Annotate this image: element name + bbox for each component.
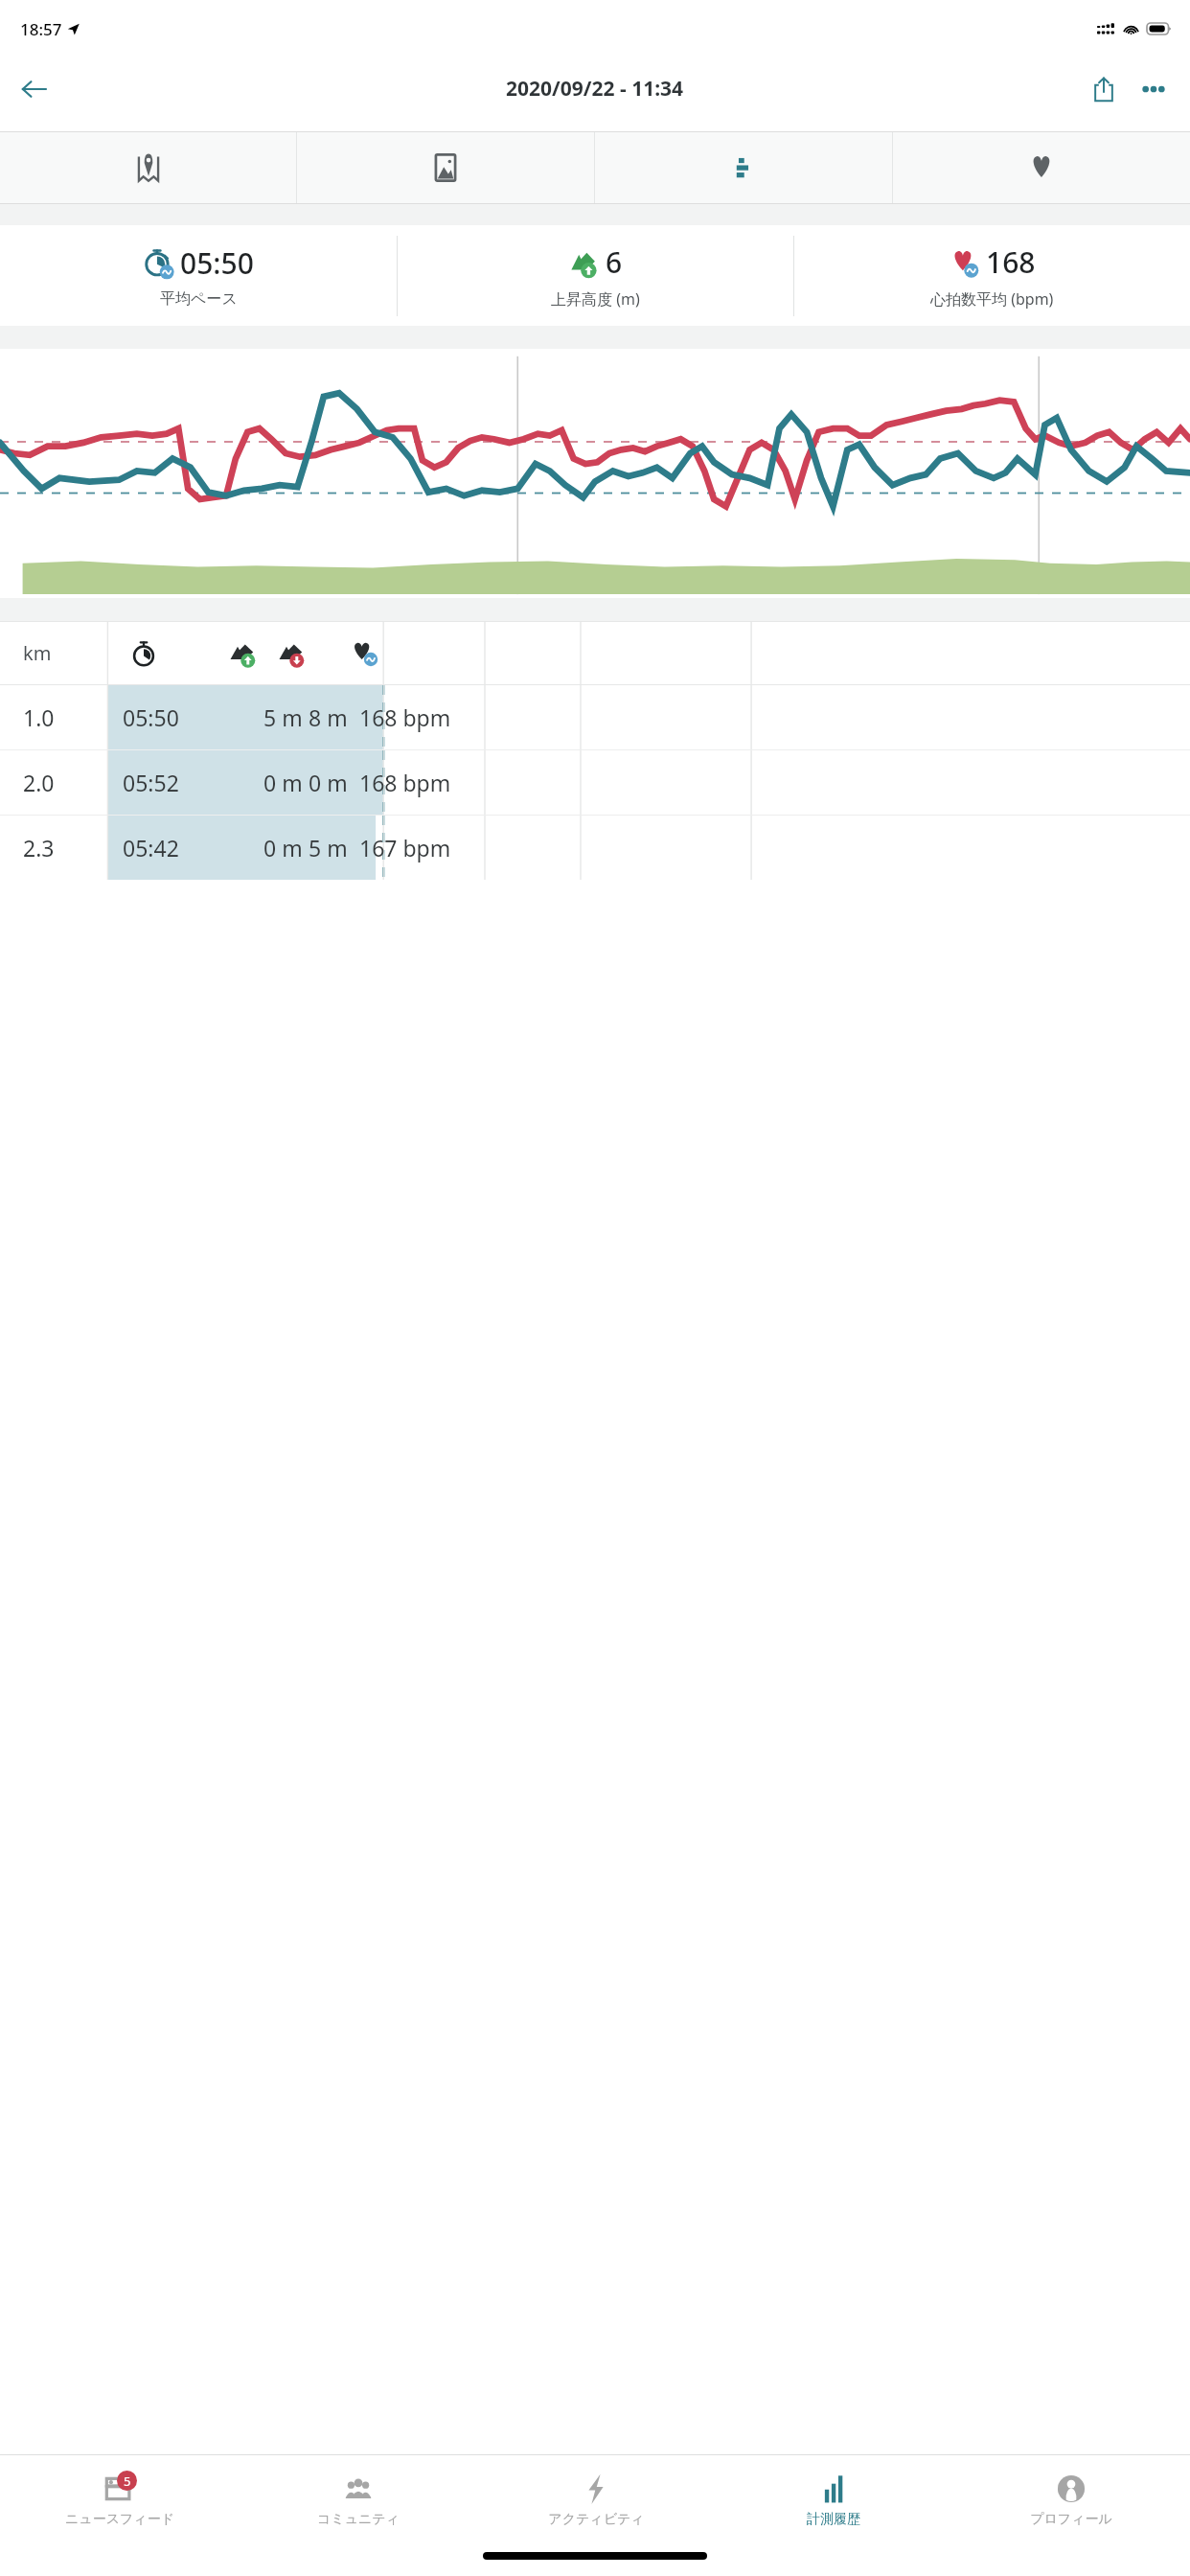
staticText: 平均ペース <box>160 289 238 309</box>
button[interactable]: 2.3 <box>0 816 1190 880</box>
staticText: km <box>23 640 52 666</box>
staticText: 2.3 <box>23 833 55 862</box>
button[interactable]: Charts <box>595 132 892 203</box>
button[interactable]: Back <box>8 63 59 115</box>
staticText: 2020/09/22 - 11:34 <box>506 75 684 103</box>
button[interactable]: プロフィール <box>952 2455 1190 2543</box>
staticText: 5 m <box>309 833 348 862</box>
staticText: 168 bpm <box>359 768 451 797</box>
staticText: 心拍数平均 (bpm) <box>930 288 1054 310</box>
other: Descent <box>278 639 307 668</box>
staticText: アクティビティ <box>548 2511 645 2528</box>
staticText: 8 m <box>309 702 348 732</box>
button[interactable]: コミュニティ <box>239 2455 477 2543</box>
staticText: 05:42 <box>123 833 179 862</box>
button[interactable]: 6 <box>398 225 793 326</box>
staticText: 計測履歴 <box>807 2511 860 2528</box>
staticText: ニュースフィード <box>65 2511 174 2528</box>
other: Pace <box>129 639 158 668</box>
button[interactable]: Share <box>1079 64 1129 114</box>
staticText: 168 <box>986 242 1036 282</box>
staticText: 上昇高度 (m) <box>551 288 640 310</box>
staticText: 18:57 <box>20 18 62 40</box>
staticText: 0 m <box>263 768 303 797</box>
staticText: 2.0 <box>23 768 55 797</box>
other: Heart rate <box>351 639 379 668</box>
button[interactable]: 168 <box>794 225 1190 326</box>
button[interactable]: More options <box>1129 64 1179 114</box>
staticText: 5 m <box>263 702 303 732</box>
staticText: 5 <box>124 2472 131 2490</box>
staticText: 1.0 <box>23 702 55 732</box>
button[interactable]: 1.0 <box>0 685 1190 749</box>
button[interactable]: 5 <box>0 2455 239 2543</box>
staticText: 0 m <box>263 833 303 862</box>
staticText: コミュニティ <box>317 2511 400 2528</box>
staticText: 05:50 <box>123 702 179 732</box>
button[interactable]: アクティビティ <box>477 2455 715 2543</box>
staticText: 0 m <box>309 768 348 797</box>
button[interactable]: Map <box>0 132 296 203</box>
staticText: 05:52 <box>123 768 179 797</box>
staticText: 05:50 <box>180 243 254 283</box>
staticText: 168 bpm <box>359 702 451 732</box>
button[interactable]: Heart rate <box>893 132 1190 203</box>
button[interactable]: 05:50 <box>0 225 397 326</box>
button[interactable]: Photos <box>297 132 594 203</box>
other: Ascent <box>229 639 258 668</box>
button[interactable]: 計測履歴 <box>715 2455 952 2543</box>
staticText: プロフィール <box>1030 2511 1112 2528</box>
staticText: 167 bpm <box>359 833 451 862</box>
button[interactable]: 2.0 <box>0 750 1190 815</box>
staticText: 6 <box>606 242 623 282</box>
